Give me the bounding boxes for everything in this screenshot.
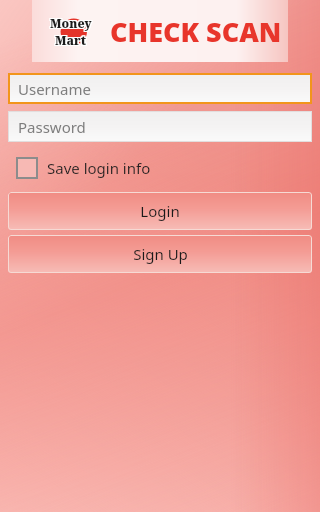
staticText: Password [18,117,86,137]
staticText: Money [50,15,92,31]
staticText: Mart [55,32,87,48]
staticText: Mart [55,31,87,47]
staticText: CHECK SCAN [110,13,282,50]
staticText: Money [51,16,93,32]
button[interactable]: Password [8,111,312,142]
staticText: Mart [56,33,88,49]
staticText: Money [49,14,91,30]
button[interactable]: Save login info [14,153,153,183]
staticText: Mart [56,32,88,48]
button[interactable]: Login [8,192,312,230]
staticText: Money [50,14,92,30]
staticText: Money [50,16,92,32]
button[interactable]: Username [8,73,312,104]
staticText: Mart [56,31,88,47]
button[interactable]: Sign Up [8,235,312,273]
staticText: Mart [54,31,86,47]
staticText: Money [51,15,93,31]
staticText: Login [140,201,180,221]
staticText: Mart [54,32,86,48]
staticText: Username [18,79,91,99]
staticText: Save login info [47,158,151,178]
staticText: Mart [55,33,87,49]
staticText: Money [49,16,91,32]
staticText: Money [51,14,93,30]
staticText: Sign Up [133,244,188,264]
staticText: Mart [54,33,86,49]
staticText: Money [49,15,91,31]
